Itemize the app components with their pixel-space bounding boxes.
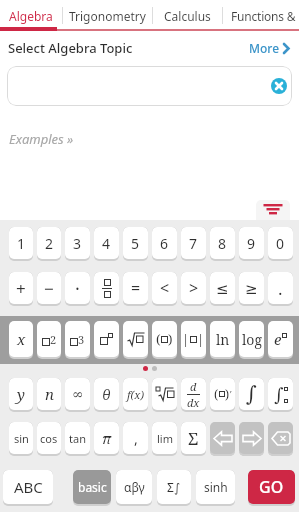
button[interactable]: 0 [268,227,293,259]
button[interactable]: 6 [152,227,177,259]
button[interactable]: sinh [196,470,235,504]
button[interactable]: 2 [37,321,61,357]
button[interactable]: 5 [123,227,148,259]
button[interactable]: ≥ [239,272,264,304]
button[interactable]: + [9,272,33,304]
button[interactable]: > [181,272,206,304]
button[interactable]: Σ∫ [157,470,191,504]
button[interactable]: ABC [3,470,53,504]
button[interactable]: n [37,378,61,410]
staticText: ∫ [274,384,284,405]
staticText: θ [102,385,111,404]
button[interactable]: ln [210,321,235,357]
staticText: . [278,277,283,300]
staticText: 6 [160,234,169,253]
button[interactable]: ∫ [268,378,293,410]
button[interactable]: Functions & Graphs [222,0,299,31]
staticText: f(x) [127,387,145,402]
button[interactable]: e [268,321,293,357]
button[interactable]: 9 [239,227,264,259]
button[interactable]: θ [94,378,119,410]
button[interactable]: x [9,321,33,357]
staticText: tan [69,431,86,446]
button[interactable]: − [37,272,61,304]
button[interactable]: < [152,272,177,304]
staticText: Σ [188,427,199,450]
button[interactable]: π [94,422,119,454]
button[interactable] [210,422,235,454]
button[interactable]: ( [152,321,177,357]
button[interactable]: 1 [9,227,33,259]
staticText: lim [157,431,173,446]
button[interactable]: 8 [210,227,235,259]
button[interactable]: log [239,321,264,357]
button[interactable]: Algebra [0,0,62,31]
button[interactable]: d [181,378,206,410]
staticText: · [75,276,80,301]
staticText: Algebra [9,8,53,24]
button[interactable] [152,378,177,410]
button[interactable] [94,321,119,357]
button[interactable]: tan [65,422,90,454]
staticText: More [249,40,280,56]
button[interactable] [256,200,290,220]
staticText: ≤ [216,280,229,297]
button[interactable]: basic [73,470,111,504]
staticText: log [242,330,262,349]
button[interactable]: Trigonometry [62,0,152,31]
button[interactable]: ∞ [65,378,90,410]
button[interactable]: lim [152,422,177,454]
button[interactable]: sin [9,422,33,454]
button[interactable]: αβγ [116,470,152,504]
button[interactable]: 3 [65,227,90,259]
staticText: 7 [189,234,198,253]
staticText: ( [156,330,161,348]
staticText: > [189,277,199,299]
button[interactable]: . [268,272,293,304]
staticText: | [197,330,205,348]
button[interactable] [239,422,264,454]
button[interactable]: cos [37,422,61,454]
staticText: sinh [204,479,228,495]
staticText: 9 [247,234,256,253]
button[interactable]: ( [210,378,235,410]
staticText: − [44,277,54,300]
staticText: Select Algebra Topic [8,39,133,57]
button[interactable]: More [249,40,291,56]
button[interactable] [271,78,287,94]
staticText: ∫ [246,382,257,406]
button[interactable] [239,422,264,454]
button[interactable]: Calculus [152,0,222,31]
staticText: ABC [14,477,43,497]
button[interactable]: 4 [94,227,119,259]
button[interactable]: 3 [65,321,90,357]
staticText: Trigonometry [69,8,146,24]
button[interactable]: · [65,272,90,304]
button[interactable] [94,272,119,304]
button[interactable] [7,66,292,106]
button[interactable]: f(x) [123,378,148,410]
button[interactable]: ≤ [210,272,235,304]
staticText: 4 [102,234,111,253]
button[interactable]: Σ [181,422,206,454]
button[interactable]: y [9,378,33,410]
button[interactable]: GO [248,470,295,504]
button[interactable]: 7 [181,227,206,259]
button[interactable]: | [181,321,206,357]
staticText: 5 [131,234,140,253]
staticText: dx [187,395,200,410]
button[interactable] [210,422,235,454]
button[interactable] [268,422,293,454]
staticText: d [190,379,197,394]
button[interactable]: , [123,422,148,454]
staticText: 8 [218,234,227,253]
button[interactable] [123,321,148,357]
staticText: 3 [73,234,82,253]
button[interactable]: 2 [37,227,61,259]
button[interactable] [268,422,293,454]
staticText: , [134,429,138,448]
button[interactable]: ∫ [239,378,264,410]
button[interactable]: Examples » [9,130,74,148]
button[interactable]: = [123,272,148,304]
staticText: 2 [50,332,57,347]
